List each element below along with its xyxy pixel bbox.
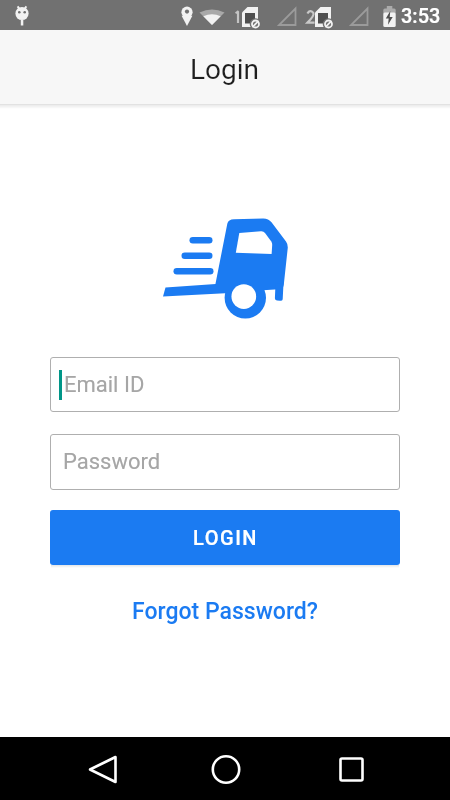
staticText: Login [190, 53, 260, 86]
staticText: Email ID [64, 372, 145, 398]
staticText: Password [63, 449, 161, 475]
staticText: Forgot Password? [132, 598, 318, 625]
staticText: 3:53 [401, 4, 441, 27]
staticText: LOGIN [193, 526, 258, 549]
